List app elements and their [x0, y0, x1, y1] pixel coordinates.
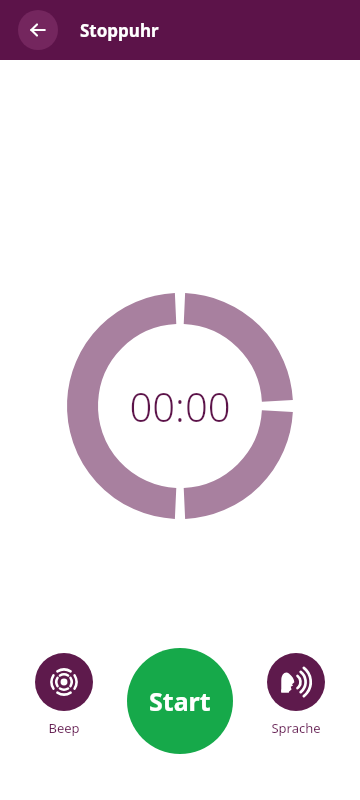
- button[interactable]: Sprache: [256, 648, 336, 737]
- staticText: 00:00: [129, 379, 231, 433]
- staticText: Beep: [48, 719, 80, 737]
- button[interactable]: Back: [18, 10, 58, 50]
- staticText: Sprache: [271, 719, 321, 737]
- button[interactable]: Start: [127, 648, 233, 754]
- staticText: Start: [149, 684, 211, 718]
- button[interactable]: Beep: [24, 648, 104, 737]
- staticText: Stoppuhr: [80, 19, 159, 42]
